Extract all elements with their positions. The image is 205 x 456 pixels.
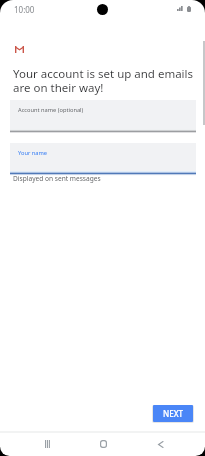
staticText: Displayed on sent messages [13,174,101,183]
button[interactable]: Account name (optional) [10,100,196,134]
staticText: 10:00 [14,4,35,15]
button[interactable]: Your name [10,143,196,177]
button[interactable]: NEXT [153,405,193,422]
staticText: Account name (optional) [18,106,84,114]
button[interactable]: Home [90,431,116,456]
button[interactable]: Recent apps [34,431,60,456]
staticText: NEXT [163,408,184,419]
staticText: Your name [18,149,47,157]
button[interactable]: Back [147,431,173,456]
staticText: Your account is set up and emails are on… [13,66,199,95]
